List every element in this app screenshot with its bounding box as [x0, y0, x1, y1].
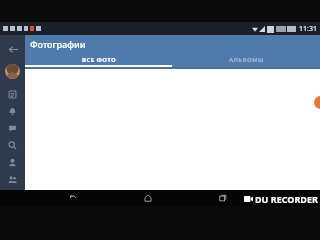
staticText: 11:31 — [299, 24, 317, 34]
button[interactable]: Notifications — [0, 103, 25, 120]
staticText: ВСЕ ФОТО — [82, 56, 116, 64]
button[interactable]: Profile — [3, 62, 22, 81]
button[interactable]: Friends — [0, 171, 25, 188]
button[interactable]: Home — [137, 190, 159, 206]
button[interactable]: Account — [0, 154, 25, 171]
button[interactable]: Search — [0, 137, 25, 154]
button[interactable]: Recent apps — [212, 190, 234, 206]
button[interactable]: АЛЬБОМЫ — [172, 53, 320, 67]
button[interactable]: Back — [3, 39, 23, 59]
button[interactable]: News — [0, 86, 25, 103]
staticText: АЛЬБОМЫ — [229, 56, 264, 64]
button[interactable]: DU Recorder — [314, 96, 320, 109]
button[interactable]: ВСЕ ФОТО — [25, 53, 172, 67]
staticText: Фотографии — [30, 38, 86, 50]
staticText: DU RECORDER — [255, 193, 318, 205]
button[interactable]: Back — [62, 190, 84, 206]
button[interactable]: Messages — [0, 120, 25, 137]
